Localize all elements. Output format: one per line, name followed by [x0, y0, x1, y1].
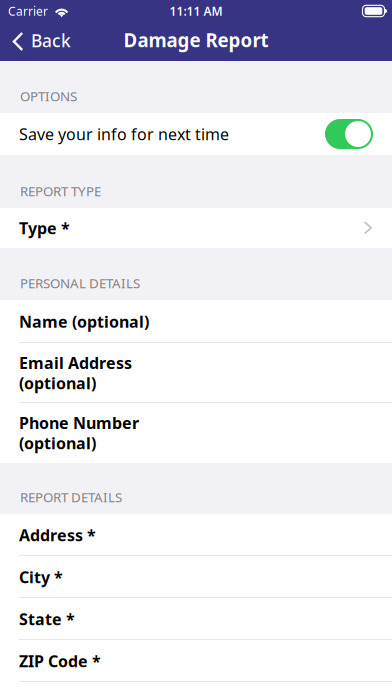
staticText: Name (optional)	[19, 311, 149, 332]
staticText: PERSONAL DETAILS	[20, 274, 140, 292]
button[interactable]: Email Address	[0, 343, 392, 403]
staticText: (optional)	[19, 432, 96, 454]
staticText: Email Address	[19, 352, 132, 373]
button[interactable]: Save your info for next time	[325, 119, 373, 149]
staticText: 11:11 AM	[169, 3, 222, 19]
staticText: Damage Report	[123, 28, 268, 52]
button[interactable]: State *	[0, 598, 392, 640]
staticText: Back	[31, 29, 71, 52]
staticText: OPTIONS	[20, 87, 77, 105]
staticText: City *	[19, 566, 63, 588]
staticText: Address *	[19, 524, 96, 546]
button[interactable]: Name (optional)	[0, 300, 392, 343]
staticText: (optional)	[19, 372, 96, 394]
staticText: Carrier	[8, 3, 48, 19]
button[interactable]: ZIP Code *	[0, 640, 392, 682]
button[interactable]: City *	[0, 556, 392, 598]
staticText: ZIP Code *	[19, 650, 101, 672]
staticText: REPORT DETAILS	[20, 488, 122, 506]
staticText: Save your info for next time	[19, 123, 229, 145]
staticText: Phone Number	[19, 412, 139, 433]
button[interactable]: Phone Number	[0, 403, 392, 463]
staticText: REPORT TYPE	[20, 182, 101, 200]
button[interactable]: Type *	[0, 208, 392, 248]
button[interactable]: Address *	[0, 514, 392, 556]
staticText: State *	[19, 608, 75, 630]
button[interactable]: Back	[0, 22, 83, 61]
staticText: Type *	[19, 217, 70, 239]
